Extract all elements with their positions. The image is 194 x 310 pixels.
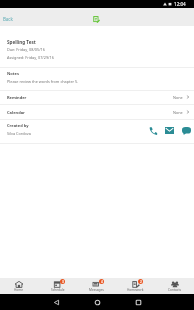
- staticText: 2: [140, 280, 142, 284]
- staticText: Due: Friday, 08/05/16: [7, 47, 45, 52]
- staticText: Home: [14, 288, 24, 292]
- button[interactable]: 3: [38, 278, 77, 294]
- staticText: Back: [3, 16, 13, 22]
- staticText: Assigned: Friday, 07/29/16: [7, 55, 54, 60]
- staticText: 12:04: [174, 1, 186, 7]
- staticText: Calendar: [7, 110, 25, 115]
- button[interactable]: Call: [144, 122, 161, 139]
- button[interactable]: Back: [0, 12, 21, 26]
- staticText: Contacts: [168, 288, 182, 292]
- staticText: None: [173, 110, 183, 115]
- staticText: Spelling Test: [7, 39, 36, 45]
- button[interactable]: Home: [90, 295, 104, 309]
- staticText: Homework: [127, 288, 144, 292]
- staticText: Silva Cordova: [7, 131, 31, 136]
- button[interactable]: Recents: [131, 295, 145, 309]
- staticText: Please review the words from chapter 5.: [7, 79, 79, 84]
- staticText: Schedule: [51, 288, 65, 292]
- button[interactable]: Contacts: [155, 278, 194, 294]
- staticText: Messages: [89, 288, 104, 292]
- button[interactable]: 2: [116, 278, 155, 294]
- staticText: None: [173, 95, 183, 100]
- button[interactable]: Back: [49, 295, 63, 309]
- button[interactable]: Email: [161, 122, 178, 139]
- staticText: Notes: [7, 71, 19, 76]
- staticText: Reminder: [7, 95, 27, 100]
- button[interactable]: Home: [0, 278, 38, 294]
- button[interactable]: Reminder: [0, 90, 194, 104]
- staticText: Created by: [7, 123, 29, 128]
- staticText: 4: [101, 280, 103, 284]
- button[interactable]: Message: [178, 122, 194, 139]
- button[interactable]: 4: [77, 278, 116, 294]
- button[interactable]: Calendar: [0, 105, 194, 119]
- staticText: 3: [62, 280, 64, 284]
- button[interactable]: Assignment: [89, 12, 103, 26]
